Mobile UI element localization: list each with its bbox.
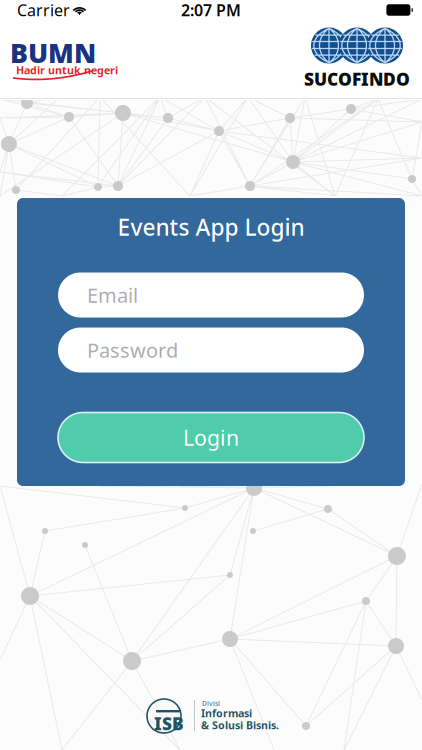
staticText: Carrier — [17, 0, 70, 21]
staticText: Divisi — [202, 699, 220, 708]
staticText: & Solusi Bisnis. — [201, 718, 279, 732]
staticText: Hadir untuk negeri — [16, 63, 118, 77]
staticText: Informasi — [201, 706, 252, 720]
staticText: Events App Login — [117, 212, 304, 242]
staticText: ISB — [154, 712, 184, 735]
button[interactable]: Login — [58, 412, 364, 462]
staticText: Password — [87, 337, 178, 363]
staticText: Email — [87, 282, 138, 308]
staticText: 2:07 PM — [181, 0, 241, 21]
staticText: Login — [183, 423, 239, 452]
staticText: BUMN — [10, 35, 96, 70]
staticText: SUCOFINDO — [304, 67, 410, 90]
